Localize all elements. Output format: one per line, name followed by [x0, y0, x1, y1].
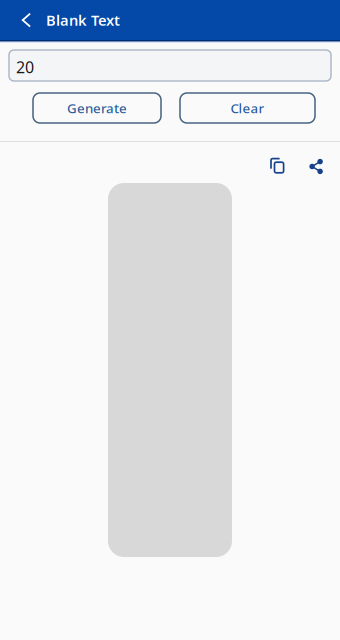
- button[interactable]: Share: [303, 152, 329, 178]
- button[interactable]: Copy: [263, 152, 289, 178]
- staticText: 20: [16, 56, 34, 78]
- staticText: Clear: [230, 99, 264, 117]
- button[interactable]: Back: [0, 0, 43, 40]
- staticText: Blank Text: [46, 10, 120, 30]
- button[interactable]: 20: [9, 50, 331, 81]
- button[interactable]: Generate: [33, 93, 161, 123]
- button[interactable]: Clear: [180, 93, 315, 123]
- staticText: Generate: [67, 99, 127, 117]
